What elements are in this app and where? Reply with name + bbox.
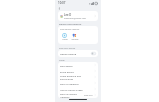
button[interactable]: Add to Home screen [58,86,98,92]
button[interactable]: Find My Device Network [58,92,98,98]
staticText: Find nearby devices [60,28,80,31]
staticText: Find Out [84,94,93,97]
staticText: Erase device [60,70,94,73]
button[interactable]: Back [57,6,62,11]
button[interactable]: Lee D [58,11,98,21]
staticText: Find your phone [59,47,76,50]
staticText: Show distance and instructions [60,74,94,80]
button[interactable]: Offline finding [58,50,98,57]
button[interactable]: Tablet [60,33,69,41]
button[interactable]: Erase device [58,68,98,74]
staticText: Device information [59,22,82,25]
button[interactable]: Show distance and instructions [58,74,98,80]
staticText: Find device [60,64,94,67]
staticText: Speaker [71,38,79,41]
staticText: Tablet [62,38,68,41]
staticText: Other [59,59,65,62]
button[interactable]: Find device [58,62,98,68]
button[interactable]: Find UI feedback [58,80,98,86]
button[interactable]: Speaker [70,33,79,41]
staticText: 10:07 [58,1,66,5]
staticText: Add to Home screen [60,88,94,91]
staticText: Offline finding [60,52,91,55]
staticText: Lee D [64,13,72,17]
staticText: leedsmith@gmail.com [64,17,86,20]
staticText: Find UI feedback [60,82,94,85]
staticText: Find My Device Network [60,92,84,98]
